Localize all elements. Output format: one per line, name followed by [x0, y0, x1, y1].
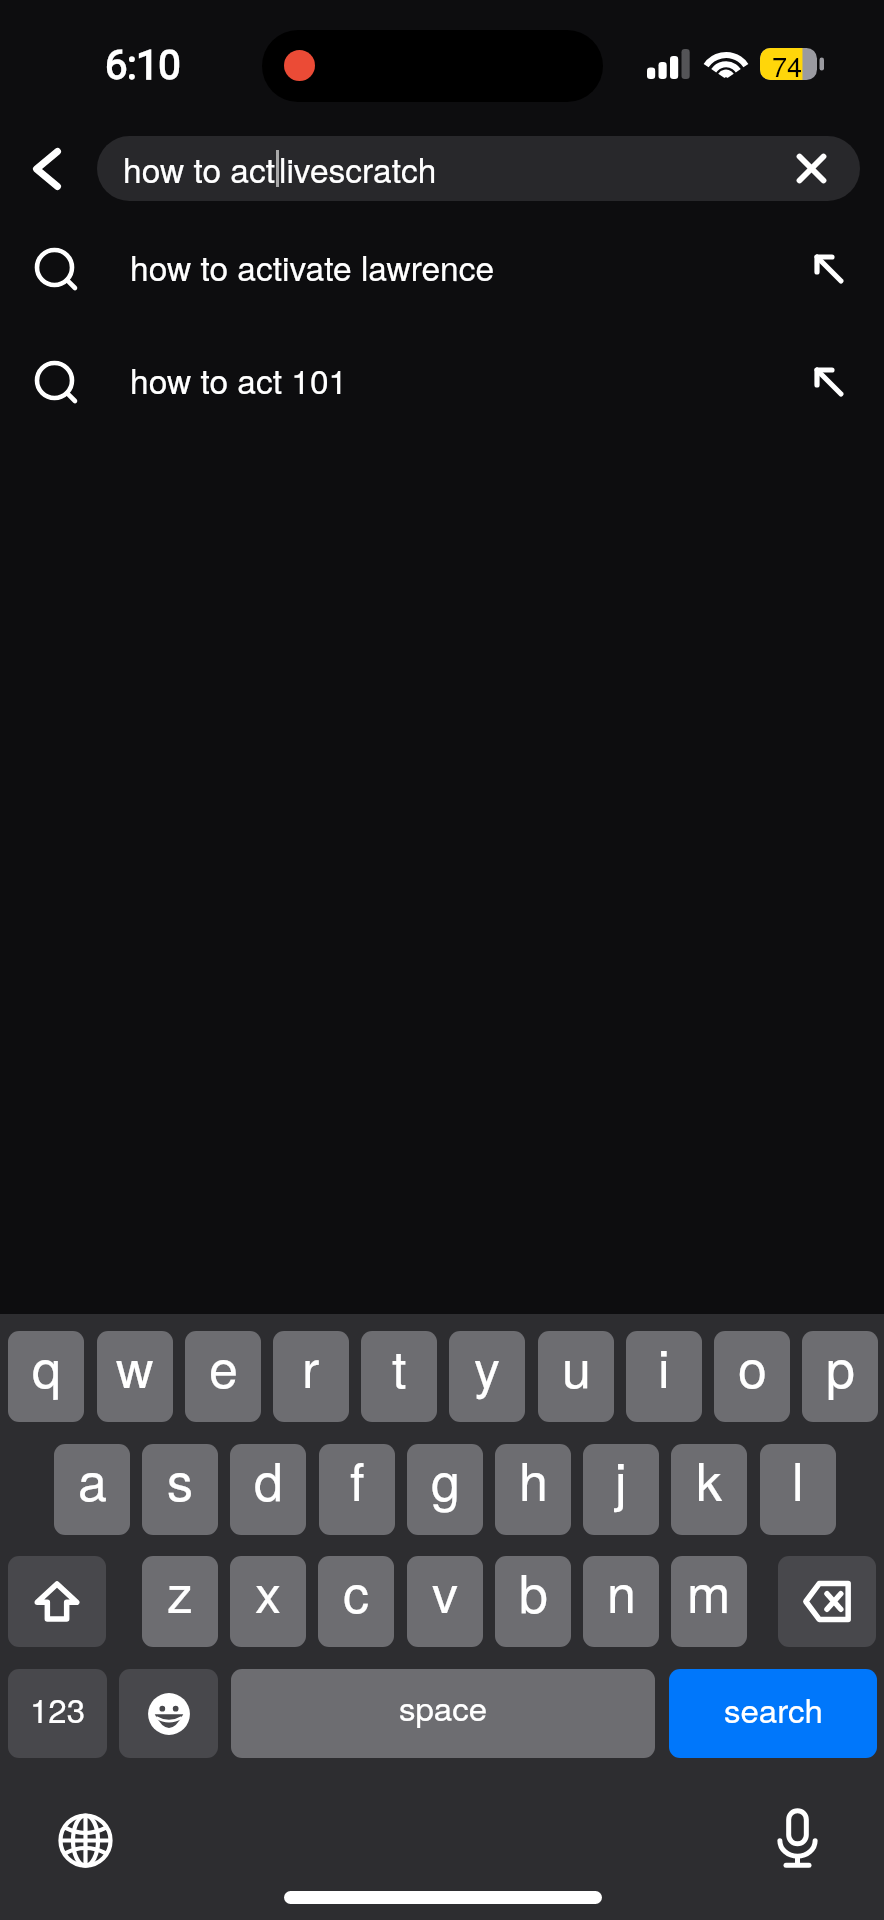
staticText: how to act — [123, 145, 276, 193]
staticText: m — [687, 1556, 731, 1627]
staticText: r — [302, 1331, 320, 1402]
staticText: w — [116, 1331, 154, 1402]
button[interactable]: q — [8, 1331, 84, 1422]
staticText: space — [399, 1683, 488, 1730]
staticText: u — [562, 1331, 591, 1402]
button[interactable]: i — [626, 1331, 702, 1422]
staticText: 123 — [30, 1685, 86, 1732]
staticText: b — [519, 1556, 548, 1627]
button[interactable]: r — [273, 1331, 349, 1422]
staticText: y — [474, 1331, 501, 1402]
button[interactable]: p — [802, 1331, 878, 1422]
staticText: z — [167, 1556, 194, 1627]
button[interactable]: o — [714, 1331, 790, 1422]
button[interactable]: Dictate — [743, 1790, 853, 1890]
button[interactable]: how to activate lawrence — [0, 207, 884, 320]
staticText: q — [32, 1331, 61, 1402]
button[interactable]: Shift — [8, 1556, 106, 1647]
staticText: s — [167, 1444, 194, 1515]
button[interactable]: h — [495, 1444, 571, 1535]
button[interactable]: b — [495, 1556, 571, 1647]
staticText: l — [792, 1444, 804, 1515]
staticText: search — [724, 1685, 823, 1732]
button[interactable]: z — [142, 1556, 218, 1647]
button[interactable]: g — [407, 1444, 483, 1535]
button[interactable]: search — [669, 1669, 877, 1758]
button[interactable]: Backspace — [778, 1556, 876, 1647]
staticText: h — [519, 1444, 548, 1515]
button[interactable]: Insert suggestion — [778, 325, 878, 438]
staticText: k — [696, 1444, 723, 1515]
button[interactable]: a — [54, 1444, 130, 1535]
button[interactable]: n — [583, 1556, 659, 1647]
staticText: 74 — [772, 46, 803, 85]
button[interactable]: l — [760, 1444, 836, 1535]
button[interactable]: k — [671, 1444, 747, 1535]
button[interactable]: Clear text — [769, 136, 854, 201]
button[interactable]: j — [583, 1444, 659, 1535]
staticText: how to act 101 — [130, 356, 348, 404]
button[interactable]: u — [538, 1331, 614, 1422]
staticText: c — [343, 1556, 370, 1627]
button[interactable]: m — [671, 1556, 747, 1647]
staticText: i — [658, 1331, 670, 1402]
staticText: f — [350, 1444, 365, 1515]
staticText: n — [607, 1556, 636, 1627]
button[interactable]: Insert suggestion — [778, 212, 878, 325]
staticText: o — [738, 1331, 767, 1402]
staticText: j — [615, 1444, 627, 1515]
button[interactable]: how to act 101 — [0, 320, 884, 433]
button[interactable]: w — [97, 1331, 173, 1422]
button[interactable]: Switch keyboard — [30, 1790, 140, 1890]
staticText: e — [209, 1331, 238, 1402]
button[interactable]: c — [318, 1556, 394, 1647]
button[interactable]: y — [449, 1331, 525, 1422]
button[interactable]: t — [361, 1331, 437, 1422]
button[interactable]: Back — [0, 120, 97, 217]
button[interactable]: s — [142, 1444, 218, 1535]
button[interactable]: x — [230, 1556, 306, 1647]
button[interactable]: e — [185, 1331, 261, 1422]
staticText: t — [392, 1331, 407, 1402]
staticText: d — [254, 1444, 283, 1515]
button[interactable]: how to act — [97, 136, 860, 201]
button[interactable]: v — [407, 1556, 483, 1647]
staticText: v — [432, 1556, 459, 1627]
staticText: 6:10 — [105, 42, 181, 89]
button[interactable]: Emoji — [119, 1669, 218, 1758]
staticText: how to activate lawrence — [130, 243, 495, 291]
button[interactable]: 123 — [8, 1669, 107, 1758]
button[interactable]: f — [319, 1444, 395, 1535]
staticText: x — [255, 1556, 282, 1627]
button[interactable]: d — [230, 1444, 306, 1535]
button[interactable]: space — [231, 1669, 655, 1758]
staticText: p — [826, 1331, 855, 1402]
staticText: livescratch — [279, 145, 437, 193]
staticText: g — [431, 1444, 460, 1515]
staticText: a — [78, 1444, 107, 1515]
